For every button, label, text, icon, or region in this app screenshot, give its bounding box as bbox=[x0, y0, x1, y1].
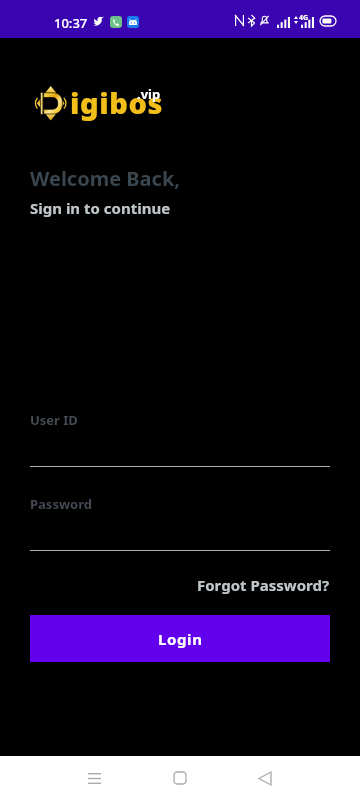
staticText: Welcome Back, bbox=[30, 165, 180, 192]
button[interactable]: Forgot Password? bbox=[197, 575, 330, 595]
button[interactable]: Home bbox=[156, 756, 204, 800]
staticText: Login bbox=[158, 629, 203, 649]
button[interactable]: Login bbox=[30, 615, 330, 662]
staticText: Password bbox=[30, 495, 92, 513]
button[interactable]: Recent apps bbox=[70, 756, 118, 800]
staticText: User ID bbox=[30, 411, 78, 429]
staticText: Sign in to continue bbox=[30, 198, 171, 218]
button[interactable]: Back bbox=[241, 756, 289, 800]
staticText: 4G bbox=[299, 13, 309, 23]
staticText: igibos bbox=[70, 83, 164, 122]
staticText: 10:37 bbox=[54, 14, 88, 32]
staticText: .vip bbox=[137, 85, 161, 103]
